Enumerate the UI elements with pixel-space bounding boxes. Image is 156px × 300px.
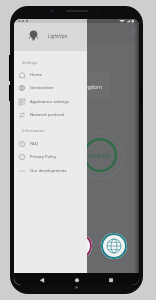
button[interactable]: Geolocation	[14, 81, 87, 94]
staticText: FAQ	[30, 141, 38, 147]
staticText: Our developments	[30, 168, 67, 174]
staticText: Home	[30, 72, 42, 78]
button[interactable]: Help	[128, 26, 139, 38]
button[interactable]: Recent apps	[104, 273, 118, 285]
button[interactable]: Application settings	[14, 95, 87, 108]
button[interactable]: Home	[70, 273, 84, 285]
staticText: Information	[22, 128, 45, 133]
button[interactable]: Privacy Policy	[14, 150, 87, 163]
staticText: Privacy Policy	[30, 154, 57, 160]
button[interactable]: Our developments	[14, 164, 87, 177]
button[interactable]: Speed test	[66, 233, 92, 259]
button[interactable]: FAQ	[14, 137, 87, 150]
staticText: Application settings	[30, 99, 69, 105]
staticText: Geolocation	[30, 85, 54, 91]
button[interactable]: Home	[14, 68, 87, 81]
staticText: CONNECTED	[83, 153, 111, 159]
button[interactable]: Back	[35, 273, 49, 285]
button[interactable]: Network protocol	[14, 108, 87, 121]
staticText: Network protocol	[30, 112, 65, 118]
staticText: Settings	[22, 60, 38, 65]
staticText: United Kingdom	[62, 83, 102, 90]
button[interactable]	[14, 72, 111, 99]
staticText: LightVpn	[48, 33, 68, 39]
button[interactable]: Select server	[101, 233, 127, 259]
